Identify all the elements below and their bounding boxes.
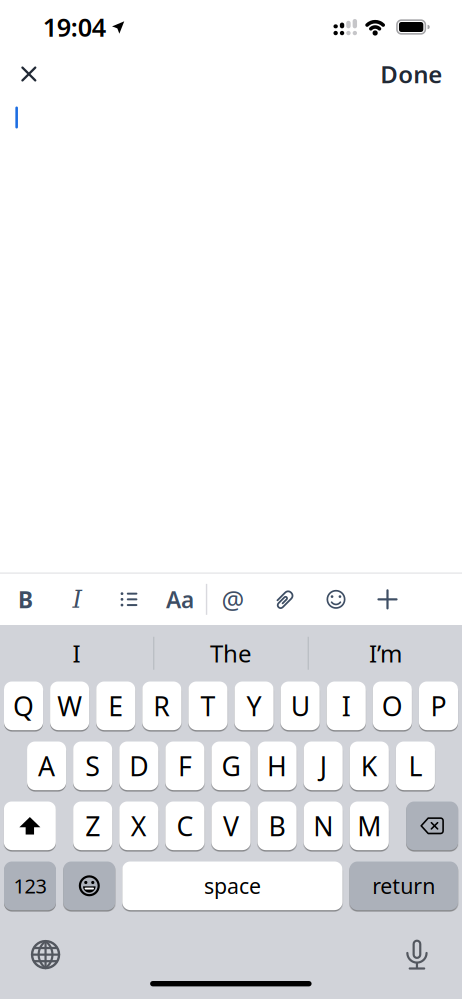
- button[interactable]: G: [211, 741, 250, 790]
- button[interactable]: Done: [380, 58, 462, 90]
- staticText: 123: [13, 872, 46, 899]
- button[interactable]: return: [349, 861, 458, 910]
- staticText: P: [430, 688, 446, 723]
- button[interactable]: E: [96, 681, 135, 730]
- button[interactable]: B: [258, 801, 297, 850]
- button[interactable]: [406, 801, 458, 850]
- button[interactable]: L: [396, 741, 435, 790]
- staticText: B: [18, 584, 33, 614]
- button[interactable]: space: [122, 861, 342, 910]
- staticText: Q: [13, 688, 34, 723]
- staticText: S: [85, 748, 100, 783]
- button[interactable]: R: [142, 681, 181, 730]
- button[interactable]: [4, 801, 56, 850]
- button[interactable]: N: [304, 801, 343, 850]
- staticText: R: [153, 688, 170, 723]
- button[interactable]: Y: [234, 681, 274, 730]
- staticText: K: [361, 748, 378, 783]
- staticText: Y: [246, 688, 261, 723]
- button[interactable]: @: [207, 574, 259, 625]
- button[interactable]: [0, 67, 46, 81]
- button[interactable]: [259, 574, 310, 625]
- staticText: B: [269, 808, 286, 843]
- staticText: H: [267, 748, 287, 783]
- staticText: G: [221, 748, 240, 783]
- button[interactable]: I: [51, 574, 103, 625]
- staticText: O: [382, 688, 403, 723]
- staticText: J: [320, 748, 327, 783]
- staticText: I: [73, 585, 82, 613]
- staticText: L: [408, 748, 422, 783]
- staticText: I’m: [369, 637, 402, 669]
- staticText: Done: [380, 58, 442, 90]
- button[interactable]: C: [165, 801, 204, 850]
- button[interactable]: P: [419, 681, 458, 730]
- button[interactable]: A: [27, 741, 66, 790]
- button[interactable]: J: [304, 741, 343, 790]
- staticText: A: [38, 748, 55, 783]
- staticText: I: [72, 637, 80, 669]
- button[interactable]: X: [119, 801, 158, 850]
- button[interactable]: M: [350, 801, 389, 850]
- staticText: N: [313, 808, 333, 843]
- button[interactable]: H: [257, 741, 297, 790]
- staticText: I: [342, 688, 351, 723]
- button[interactable]: The: [154, 625, 308, 681]
- button[interactable]: [103, 574, 154, 625]
- button[interactable]: K: [350, 741, 389, 790]
- staticText: F: [178, 748, 192, 783]
- button[interactable]: [63, 861, 115, 910]
- staticText: D: [129, 748, 148, 783]
- staticText: space: [204, 872, 261, 900]
- button[interactable]: [362, 574, 413, 625]
- button[interactable]: [310, 574, 362, 625]
- button[interactable]: V: [211, 801, 251, 850]
- button[interactable]: F: [165, 741, 204, 790]
- staticText: X: [131, 808, 147, 843]
- staticText: Aa: [166, 584, 194, 614]
- staticText: V: [223, 808, 239, 843]
- button[interactable]: W: [50, 681, 89, 730]
- button[interactable]: D: [119, 741, 158, 790]
- staticText: return: [372, 872, 435, 900]
- button[interactable]: I’m: [309, 625, 462, 681]
- staticText: @: [221, 582, 244, 616]
- button[interactable]: I: [0, 625, 153, 681]
- button[interactable]: T: [188, 681, 227, 730]
- button[interactable]: [0, 940, 60, 969]
- staticText: M: [357, 808, 381, 843]
- button[interactable]: Aa: [154, 574, 206, 625]
- staticText: 19:04: [43, 10, 106, 44]
- button[interactable]: Z: [73, 801, 112, 850]
- button[interactable]: Q: [4, 681, 43, 730]
- button[interactable]: O: [373, 681, 412, 730]
- staticText: C: [176, 808, 193, 843]
- button[interactable]: I: [327, 681, 366, 730]
- staticText: The: [210, 637, 252, 669]
- button[interactable]: U: [281, 681, 320, 730]
- button[interactable]: S: [73, 741, 112, 790]
- button[interactable]: [407, 940, 462, 970]
- staticText: Z: [85, 808, 100, 843]
- button[interactable]: 123: [4, 861, 56, 910]
- button[interactable]: B: [0, 574, 51, 625]
- staticText: E: [108, 688, 123, 723]
- staticText: W: [57, 688, 82, 723]
- staticText: T: [200, 688, 215, 723]
- staticText: U: [291, 688, 310, 723]
